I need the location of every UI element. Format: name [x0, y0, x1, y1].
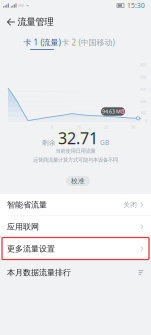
staticText: 32.71 — [58, 127, 98, 149]
button[interactable]: 校准 — [66, 176, 90, 186]
staticText: 94.63 MB — [102, 108, 124, 115]
staticText: 15 — [77, 124, 81, 130]
button[interactable]: Sort — [135, 267, 147, 279]
staticText: 1 — [24, 124, 26, 130]
staticText: 关闭 — [123, 201, 137, 209]
staticText: 800 — [140, 62, 146, 68]
button[interactable]: 卡 2 (中国移动) — [59, 37, 116, 50]
staticText: 100 — [140, 110, 146, 116]
staticText: 智能省流量 — [7, 200, 47, 210]
staticText: 当前使用日用流量 — [55, 148, 95, 154]
staticText: ⌁ — [26, 2, 29, 9]
staticText: 校准 — [71, 177, 85, 185]
staticText: 600 — [140, 74, 146, 80]
staticText: 400 — [140, 86, 146, 92]
staticText: 运营商流量计算方式可能与本设备不同 — [33, 157, 118, 163]
button[interactable]: 更多流量设置 — [0, 238, 151, 259]
staticText: GB — [100, 138, 109, 147]
button[interactable]: 卡 1 (流量) — [21, 37, 62, 50]
staticText: 卡 1 (流量) — [23, 37, 60, 48]
staticText: 30 — [131, 124, 135, 130]
staticText: 15:30 — [127, 1, 145, 10]
button[interactable]: 智能省流量 — [0, 194, 151, 215]
staticText: 应用联网 — [7, 222, 39, 232]
staticText: 更多流量设置 — [7, 244, 55, 254]
staticText: 卡 2 (中国移动) — [61, 37, 114, 48]
staticText: 本月数据流量排行 — [7, 268, 71, 278]
staticText: ᴴᴰ — [18, 2, 24, 9]
staticText: 8 — [51, 124, 53, 130]
button[interactable]: 应用联网 — [0, 216, 151, 237]
staticText: 200 — [140, 99, 146, 104]
staticText: 剩余 — [42, 139, 56, 147]
button[interactable]: Back — [3, 15, 18, 29]
staticText: 流量管理 — [17, 16, 53, 28]
staticText: 22 — [104, 124, 108, 130]
staticText: 0 — [145, 118, 147, 123]
